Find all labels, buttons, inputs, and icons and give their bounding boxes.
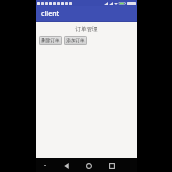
button[interactable]: 删除订单 bbox=[39, 36, 62, 45]
staticText: 删除订单 bbox=[41, 38, 60, 44]
staticText: client bbox=[41, 9, 60, 19]
button[interactable]: Home bbox=[83, 160, 94, 171]
staticText: 添加订单 bbox=[66, 38, 85, 44]
button[interactable]: Back bbox=[61, 160, 72, 171]
button[interactable]: 添加订单 bbox=[64, 36, 87, 45]
button[interactable]: Menu bbox=[40, 161, 49, 170]
button[interactable]: Recent apps bbox=[106, 160, 117, 171]
staticText: 订单管理 bbox=[40, 26, 133, 33]
